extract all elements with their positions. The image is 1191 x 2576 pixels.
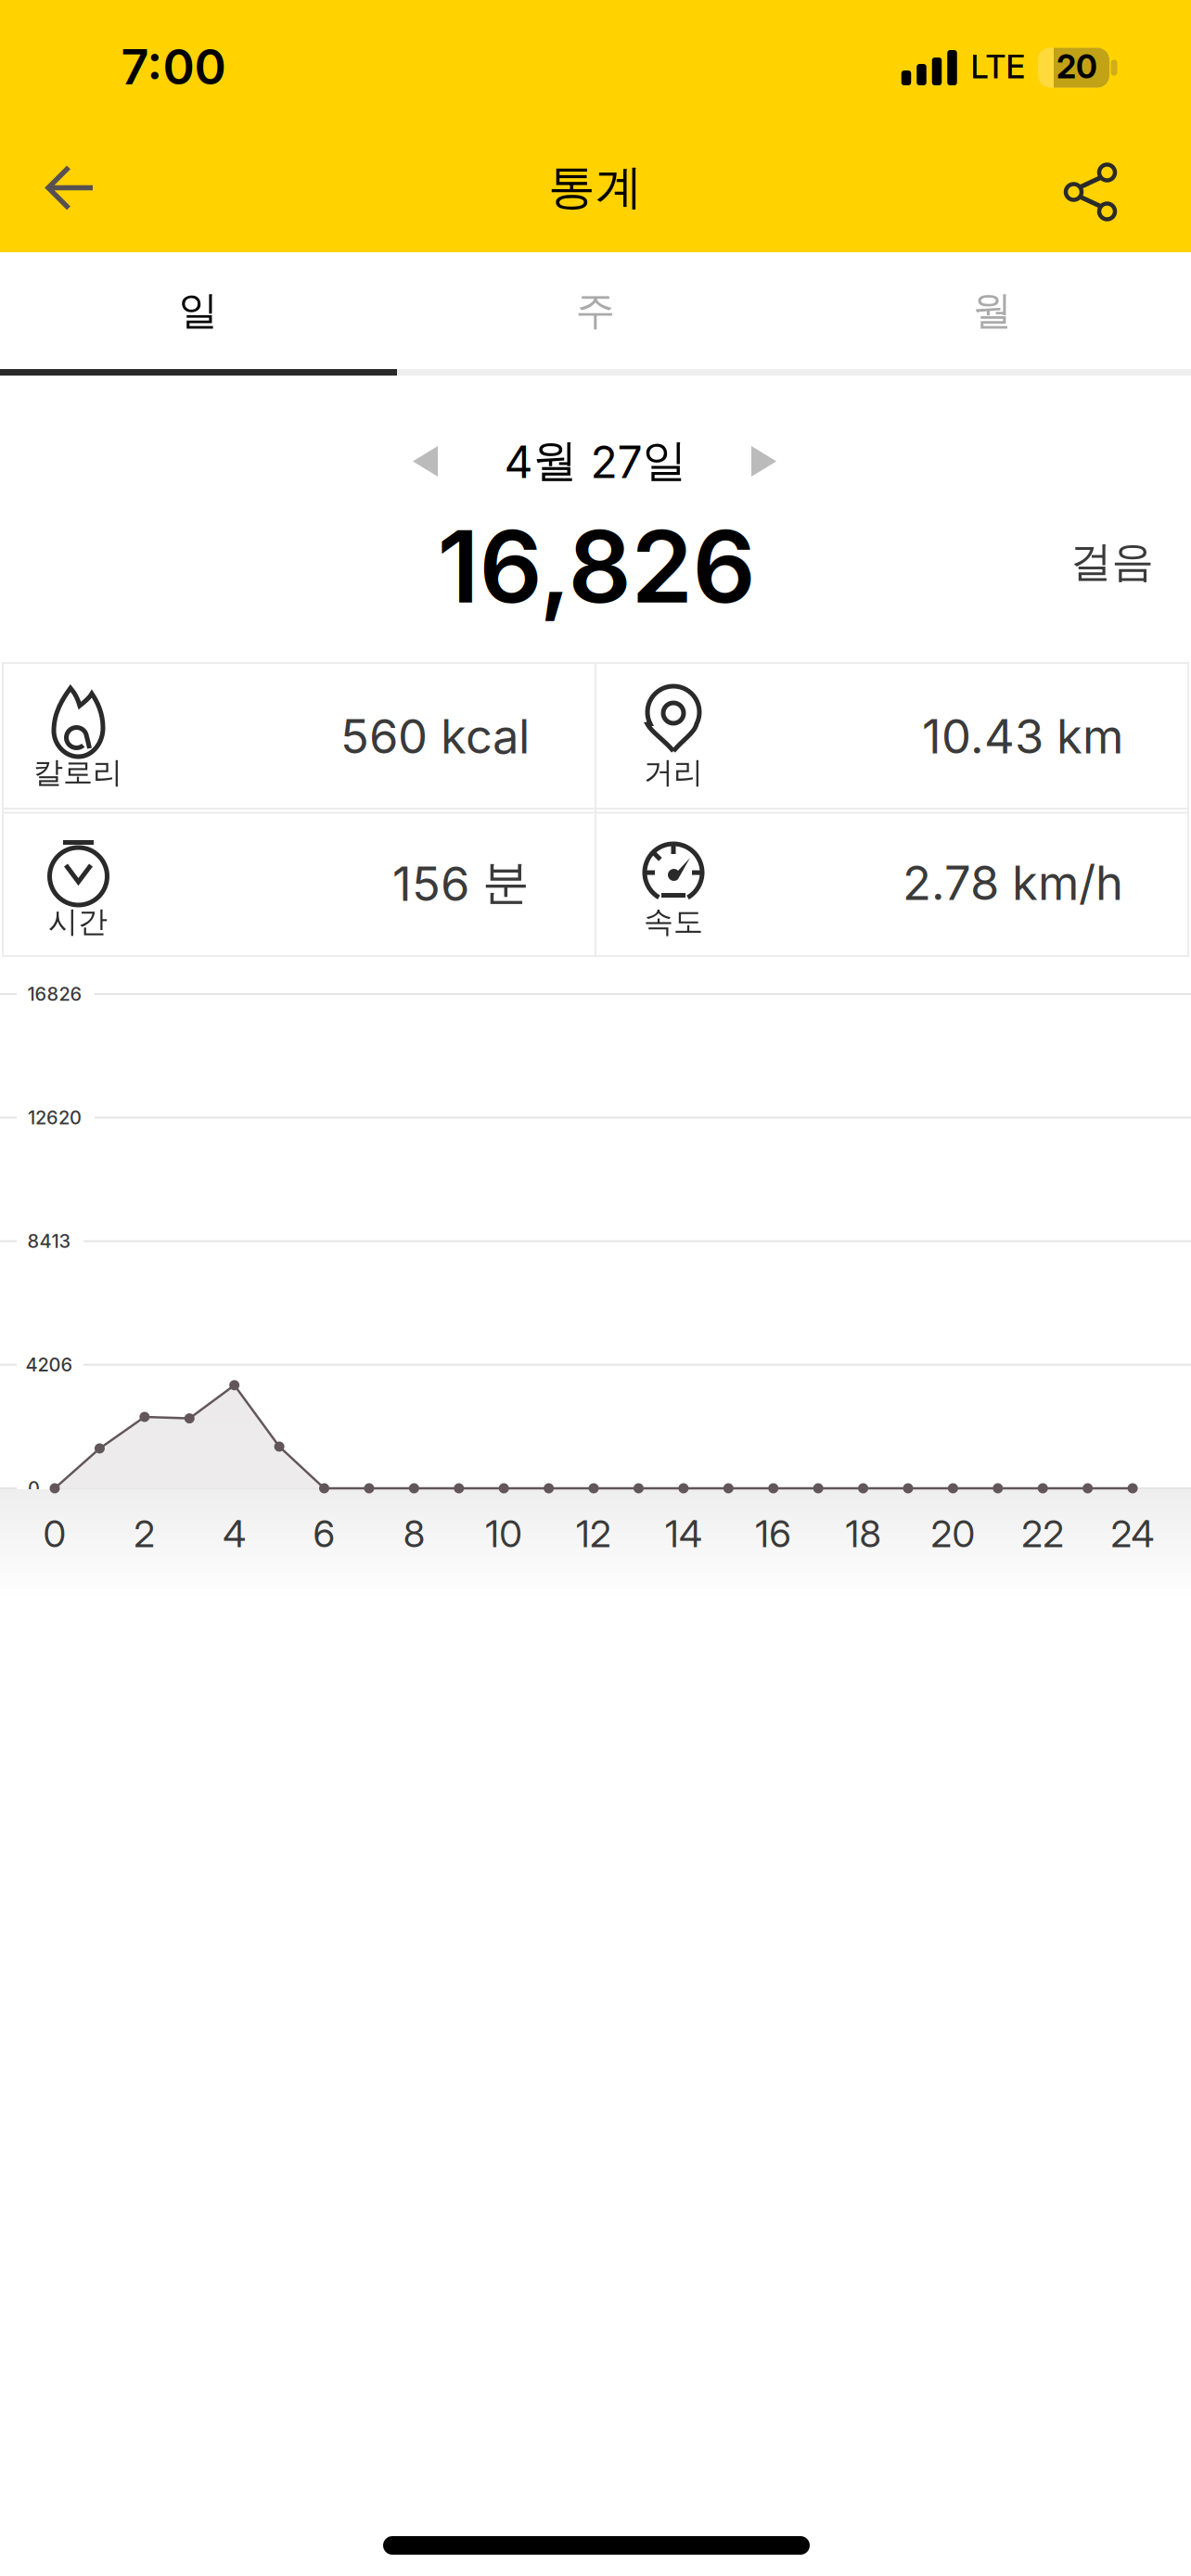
staticText: 16,826 — [437, 508, 756, 625]
staticText: 22 — [1021, 1512, 1064, 1556]
staticText: LTE — [971, 48, 1025, 86]
staticText: 4 — [223, 1512, 246, 1556]
staticText: 걸음 — [1070, 536, 1153, 588]
staticText: 560 kcal — [340, 709, 530, 764]
staticText: 20 — [1057, 48, 1097, 86]
staticText: 7:00 — [121, 38, 226, 95]
staticText: 0 — [28, 1477, 40, 1499]
staticText: 6 — [313, 1512, 335, 1556]
staticText: 2 — [134, 1512, 155, 1556]
staticText: 18 — [846, 1512, 881, 1556]
staticText: 10 — [485, 1512, 522, 1556]
staticText: 4206 — [26, 1354, 73, 1376]
staticText: 12620 — [28, 1107, 82, 1129]
staticText: 주 — [576, 286, 615, 335]
button[interactable]: 주 — [397, 252, 794, 369]
staticText: 20 — [931, 1512, 975, 1556]
button[interactable] — [736, 434, 792, 489]
staticText: 시간 — [48, 903, 108, 940]
staticText: 0 — [43, 1512, 66, 1556]
staticText: 2.78 km/h — [903, 855, 1123, 911]
staticText: 156 분 — [392, 854, 530, 912]
staticText: 14 — [665, 1512, 702, 1556]
staticText: 거리 — [644, 754, 703, 791]
staticText: 통계 — [548, 158, 643, 216]
staticText: 16826 — [27, 983, 82, 1005]
staticText: 12 — [576, 1512, 611, 1556]
staticText: 16 — [755, 1512, 791, 1556]
staticText: 10.43 km — [922, 709, 1123, 764]
button[interactable] — [0, 0, 1191, 2576]
staticText: 일 — [179, 286, 218, 335]
staticText: 월 — [973, 286, 1012, 335]
button[interactable] — [397, 434, 453, 489]
staticText: 8413 — [27, 1230, 71, 1252]
staticText: 속도 — [644, 903, 703, 940]
staticText: 4월 27일 — [504, 434, 687, 488]
button[interactable]: 일 — [0, 252, 397, 369]
staticText: 8 — [403, 1512, 425, 1556]
staticText: 칼로리 — [33, 754, 122, 791]
button[interactable] — [0, 0, 1191, 2576]
button[interactable]: 월 — [794, 252, 1191, 369]
staticText: 24 — [1111, 1512, 1154, 1556]
